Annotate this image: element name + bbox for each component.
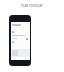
staticText: PLAN YOUR DAY	[21, 4, 43, 8]
button[interactable]: Search	[12, 24, 21, 26]
button[interactable]	[12, 31, 14, 33]
